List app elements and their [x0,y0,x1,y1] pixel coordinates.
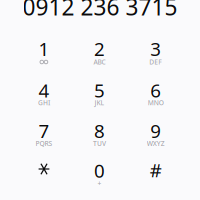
button[interactable]: 5 [72,76,127,117]
staticText: 6 [150,78,161,103]
button[interactable]: 2 [72,35,127,76]
button[interactable]: 8 [72,117,127,158]
staticText: 0912 236 3715 [22,0,177,22]
staticText: JKL [94,98,104,107]
staticText: 5 [94,78,105,103]
staticText: 3 [150,36,161,61]
staticText: PQRS [35,139,52,148]
button[interactable]: 6 [128,76,183,117]
staticText: + [97,179,101,188]
button[interactable]: 7 [16,117,71,158]
staticText: 0 [94,158,105,183]
staticText: ABC [93,57,105,66]
staticText: 2 [94,36,105,61]
staticText: MNO [148,98,164,107]
button[interactable]: 3 [128,35,183,76]
staticText: WXYZ [147,139,165,148]
staticText: GHI [38,98,50,107]
staticText: DEF [149,57,162,66]
staticText: 4 [38,78,49,103]
staticText: 9 [150,118,161,143]
staticText: TUV [93,139,106,148]
staticText: 7 [38,118,49,143]
staticText: 1 [38,36,49,61]
button[interactable]: 0912 236 3715 [7,0,193,20]
button[interactable]: 0 [72,156,127,197]
button[interactable]: Pound [128,156,183,197]
staticText: # [150,158,162,182]
button[interactable]: 4 [16,76,71,117]
button[interactable]: Star [16,156,71,197]
staticText: 8 [94,118,105,143]
button[interactable]: 1 [16,35,71,76]
button[interactable]: 9 [128,117,183,158]
